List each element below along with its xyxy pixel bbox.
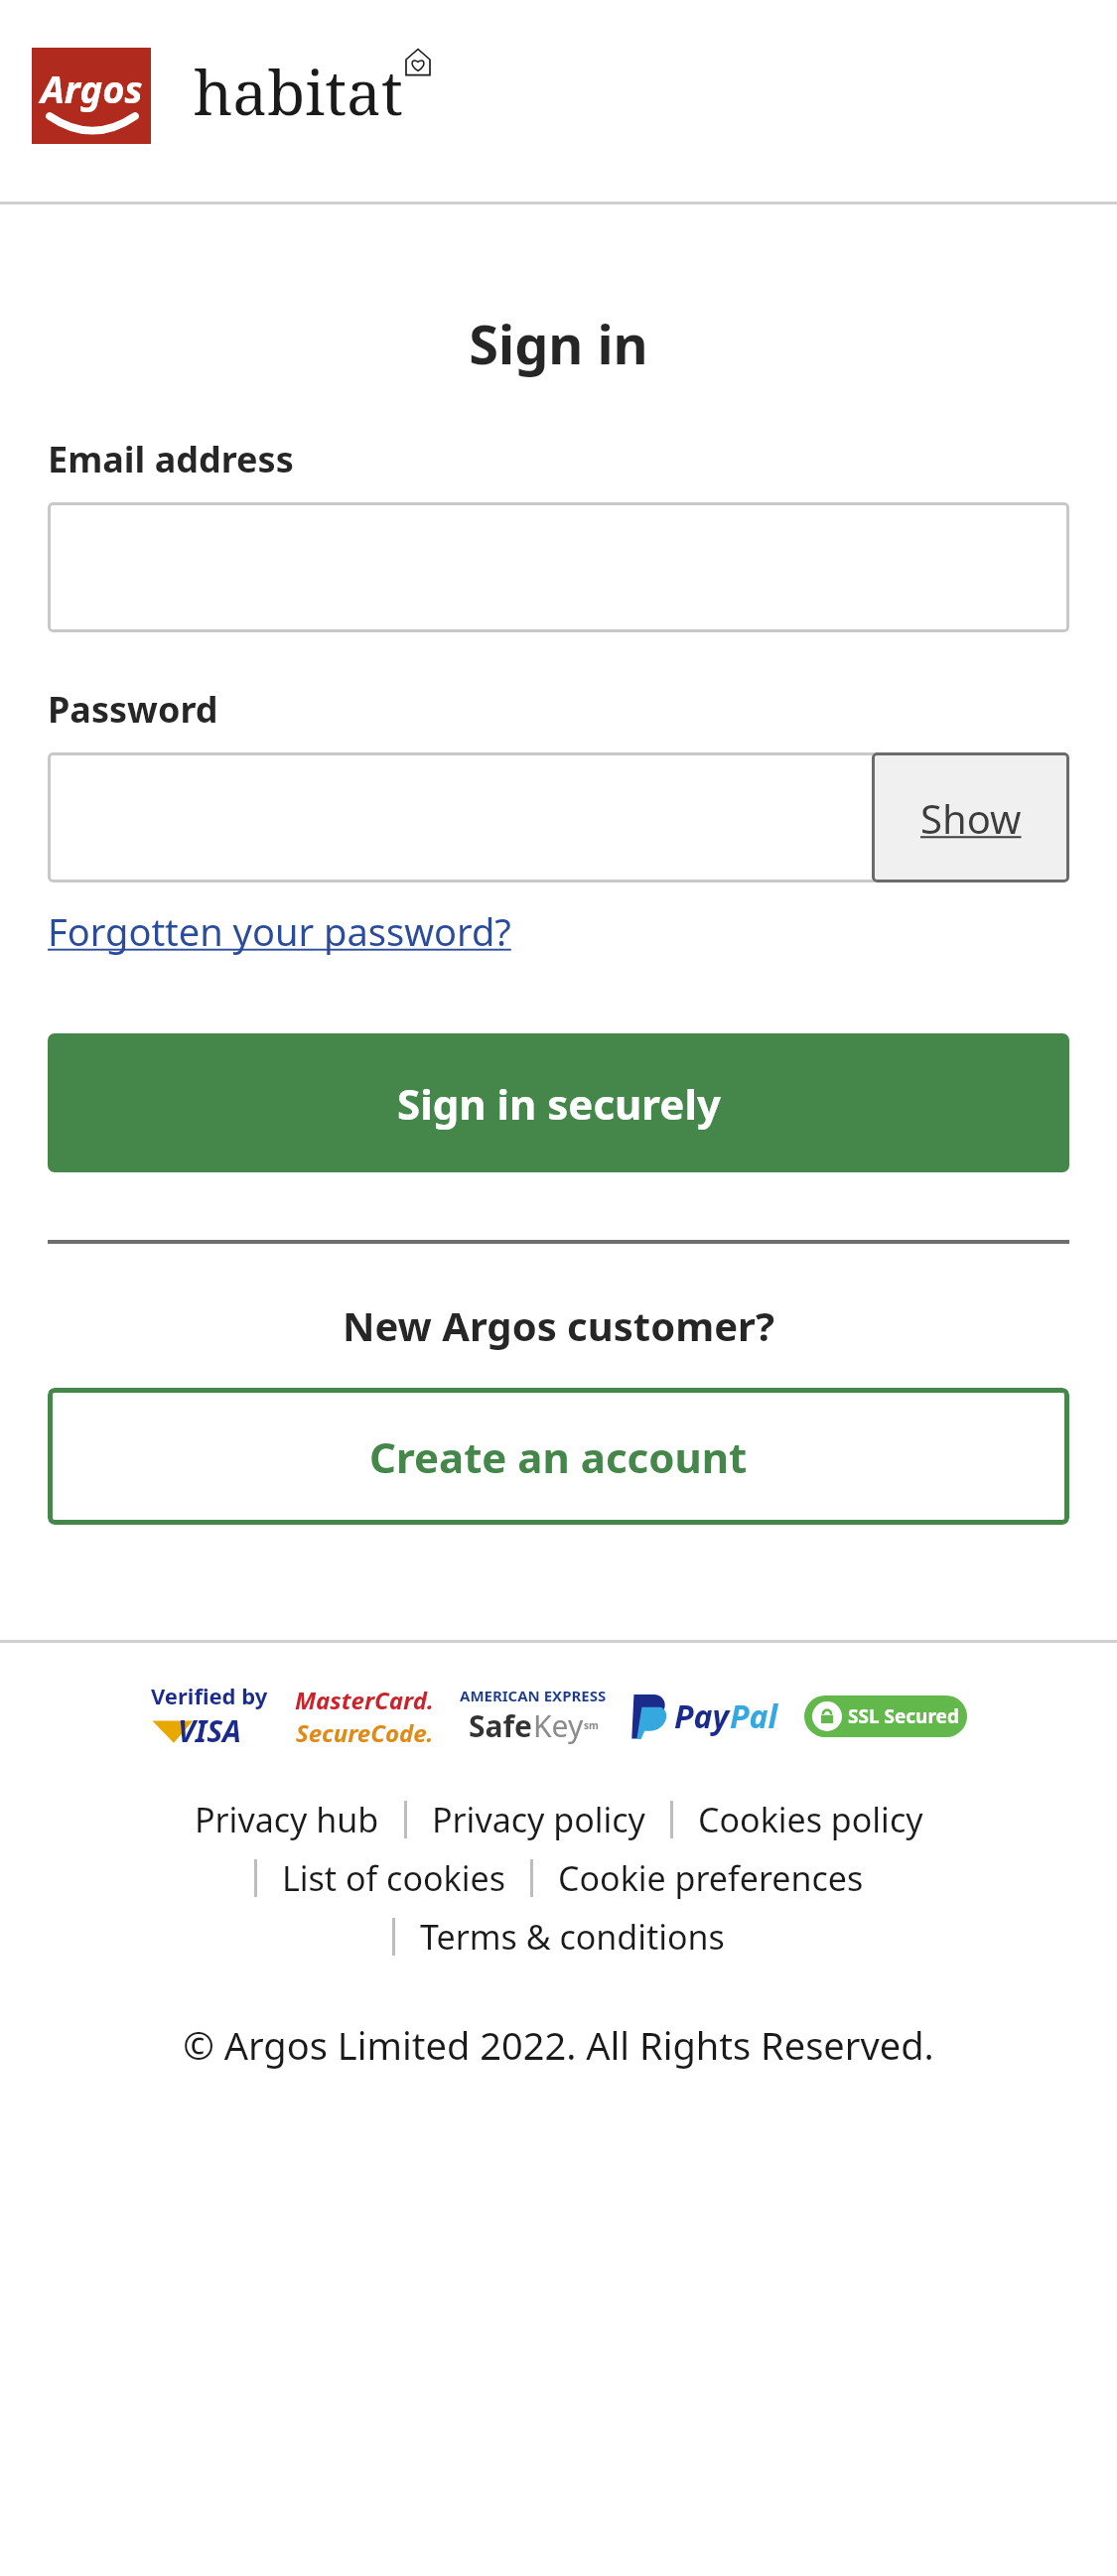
staticText: Privacy hub — [195, 1797, 379, 1842]
staticText: Terms & conditions — [420, 1914, 725, 1960]
staticText: Show — [920, 791, 1022, 845]
staticText: Cookies policy — [698, 1797, 923, 1842]
staticText: habitat — [194, 50, 403, 133]
staticText: Sign in — [48, 307, 1069, 380]
staticText: VISA — [178, 1710, 241, 1751]
button[interactable]: Terms & conditions — [420, 1914, 725, 1960]
staticText: Pal — [730, 1695, 778, 1738]
staticText: Pay — [674, 1695, 730, 1738]
button[interactable] — [48, 752, 1069, 882]
button[interactable]: Cookies policy — [698, 1797, 923, 1842]
staticText: Forgotten your password? — [48, 905, 511, 957]
staticText: Password — [48, 685, 218, 734]
staticText: sm — [584, 1718, 599, 1732]
staticText: Privacy policy — [432, 1797, 645, 1842]
button[interactable]: Create an account — [48, 1388, 1069, 1525]
staticText: SSL Secured — [848, 1703, 959, 1729]
staticText: Verified by — [151, 1681, 268, 1710]
staticText: MasterCard. — [295, 1684, 434, 1716]
staticText: List of cookies — [282, 1855, 505, 1901]
button[interactable]: Forgotten your password? — [48, 905, 511, 957]
button[interactable] — [48, 502, 1069, 632]
staticText: Email address — [48, 435, 294, 483]
button[interactable]: Show — [872, 752, 1069, 882]
staticText: New Argos customer? — [48, 1298, 1069, 1352]
staticText: Cookie preferences — [558, 1855, 864, 1901]
staticText: Argos — [41, 63, 143, 114]
staticText: Key — [533, 1705, 584, 1746]
staticText: Sign in securely — [397, 1075, 721, 1132]
button[interactable]: Cookie preferences — [558, 1855, 864, 1901]
staticText: Safe — [469, 1705, 533, 1746]
button[interactable]: Privacy policy — [432, 1797, 645, 1842]
button[interactable]: Privacy hub — [195, 1797, 379, 1842]
button[interactable]: Sign in securely — [48, 1033, 1069, 1172]
staticText: SecureCode. — [296, 1716, 434, 1749]
staticText: AMERICAN EXPRESS — [460, 1686, 607, 1705]
staticText: Create an account — [369, 1428, 748, 1485]
button[interactable]: List of cookies — [282, 1855, 505, 1901]
staticText: © Argos Limited 2022. All Rights Reserve… — [40, 2019, 1077, 2071]
